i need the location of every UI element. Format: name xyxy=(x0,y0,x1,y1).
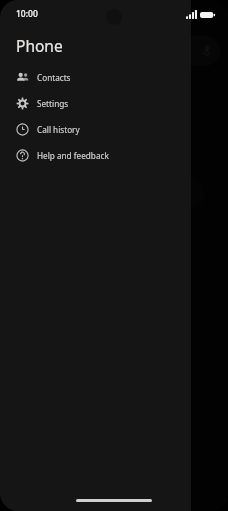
button[interactable]: Contacts xyxy=(0,64,191,90)
button[interactable]: Help and feedback xyxy=(0,142,191,168)
staticText: Settings xyxy=(37,98,69,109)
staticText: Call history xyxy=(37,124,80,135)
button[interactable]: Dial pad xyxy=(176,180,204,208)
staticText: Contacts xyxy=(37,72,71,83)
staticText: Help and feedback xyxy=(37,150,109,161)
staticText: 10:00 xyxy=(16,8,38,20)
button[interactable]: Search contacts and places xyxy=(100,36,220,66)
button[interactable]: Settings xyxy=(0,90,191,116)
staticText: Phone xyxy=(16,35,63,56)
button[interactable]: Call history xyxy=(0,116,191,142)
